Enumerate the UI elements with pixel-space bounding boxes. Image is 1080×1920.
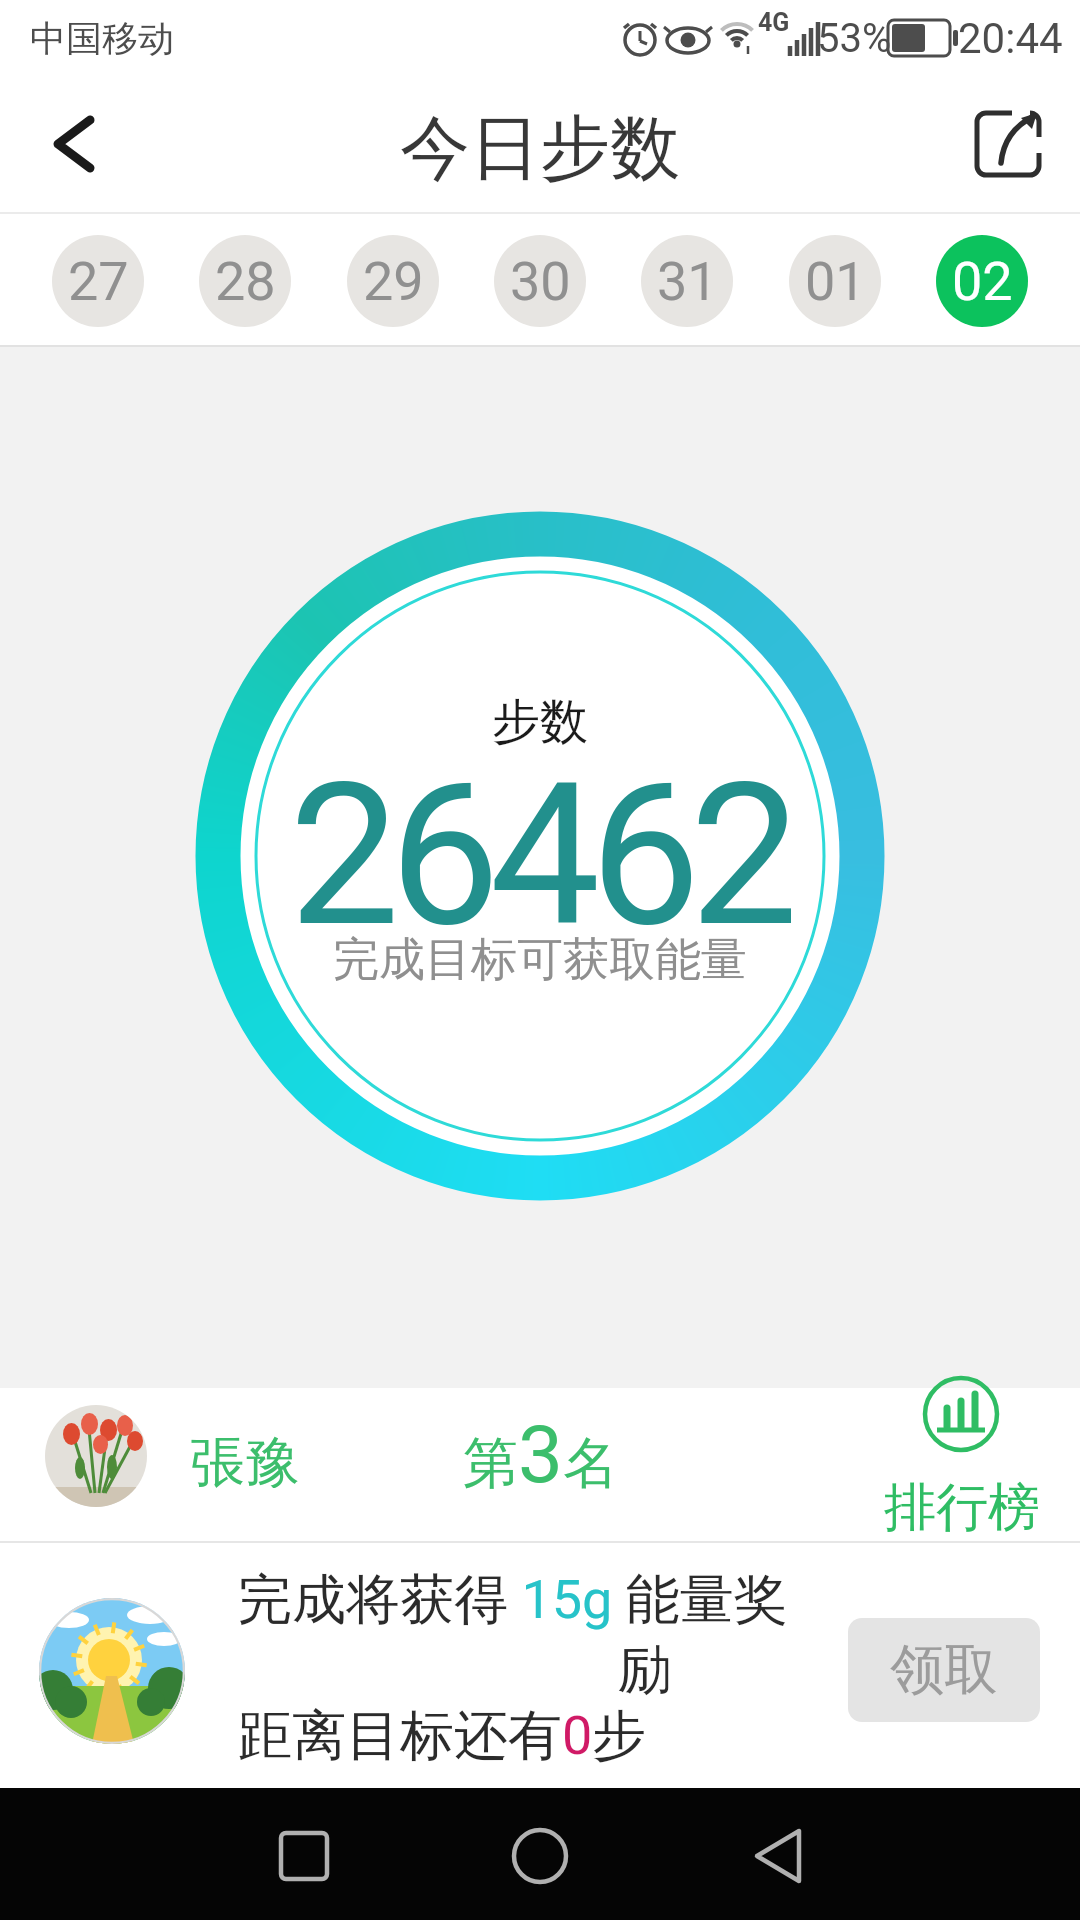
button[interactable]: 28	[199, 235, 291, 327]
staticText: 领取	[890, 1636, 998, 1704]
button[interactable]	[266, 1818, 342, 1894]
staticText: 張豫	[190, 1428, 300, 1488]
staticText: 27	[68, 250, 129, 313]
staticText: 29	[363, 250, 424, 313]
button[interactable]: 排行榜	[880, 1377, 1044, 1537]
button[interactable]	[0, 1388, 1080, 1543]
staticText: 26462	[289, 740, 791, 940]
staticText: 3	[518, 1408, 563, 1502]
staticText: 排行榜	[884, 1475, 1040, 1535]
staticText: 距离目标还有0步	[238, 1702, 647, 1766]
button[interactable]	[744, 1818, 820, 1894]
staticText: 第	[463, 1429, 518, 1498]
button[interactable]	[502, 1818, 578, 1894]
staticText: 31	[657, 250, 718, 313]
staticText: 53%	[817, 15, 892, 62]
staticText: 今日步数	[400, 105, 680, 193]
button[interactable]: 02	[936, 235, 1028, 327]
button[interactable]: 30	[494, 235, 586, 327]
button[interactable]	[970, 105, 1046, 181]
staticText: 02	[952, 250, 1013, 313]
staticText: 30	[510, 250, 571, 313]
button[interactable]: 31	[641, 235, 733, 327]
staticText: 28	[215, 250, 276, 313]
button[interactable]: 29	[347, 235, 439, 327]
button[interactable]: 27	[52, 235, 144, 327]
staticText: 完成目标可获取能量	[333, 931, 747, 989]
button[interactable]	[40, 112, 104, 176]
staticText: 中国移动	[30, 16, 174, 61]
staticText: 01	[805, 250, 866, 313]
staticText: 完成将获得 15g 能量奖	[238, 1566, 788, 1630]
staticText: 20:44	[958, 14, 1063, 63]
staticText: 名	[563, 1429, 618, 1498]
staticText: 步数	[492, 692, 588, 752]
button[interactable]: 领取	[848, 1618, 1040, 1722]
button[interactable]: 01	[789, 235, 881, 327]
staticText: 4G	[758, 8, 790, 36]
staticText: 励	[618, 1636, 672, 1700]
